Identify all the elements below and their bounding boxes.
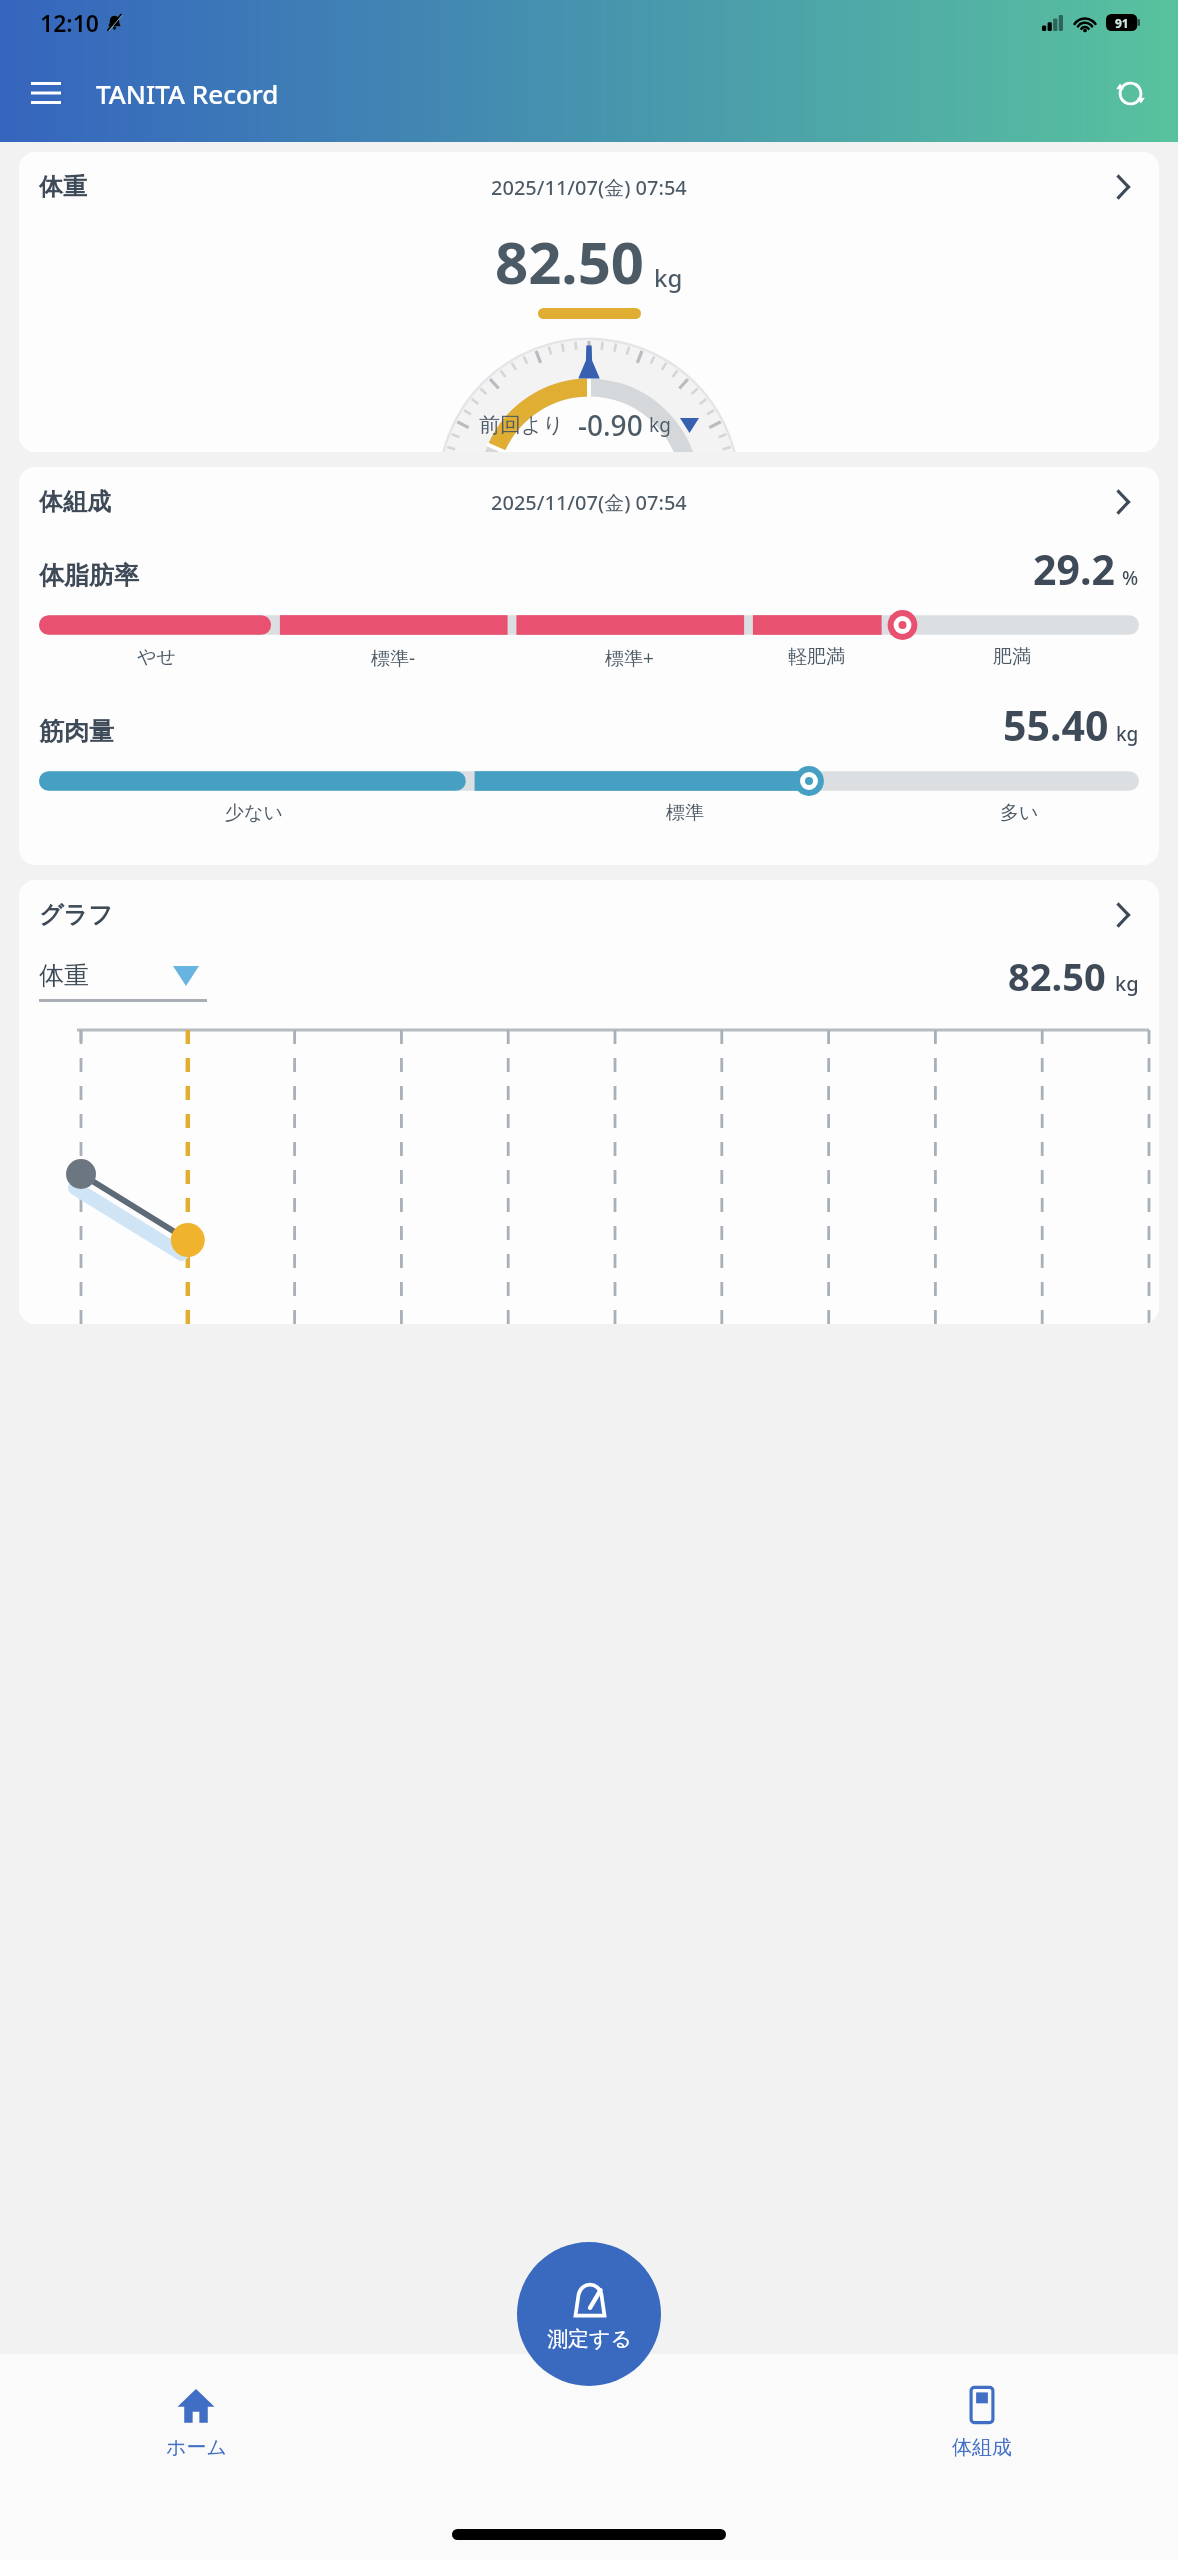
staticText: kg [649,412,671,438]
staticText: 肥満 [993,645,1031,669]
staticText: % [1122,565,1139,591]
staticText: 2025/11/07(金) 07:54 [491,489,687,516]
staticText: TANITA Record [96,76,279,111]
staticText: やせ [137,645,176,669]
staticText: 82.50 [495,222,645,301]
staticText: 前回より [479,412,564,438]
button[interactable]: グラフ [19,880,1159,1324]
staticText: 筋肉量 [39,716,114,747]
staticText: 体組成 [952,2435,1012,2460]
staticText: 体組成 [39,487,111,517]
staticText: -0.90 [578,406,643,444]
button[interactable]: 測定する [517,2242,661,2386]
staticText: 91 [1115,15,1129,31]
staticText: 2025/11/07(金) 07:54 [491,174,687,201]
staticText: 少ない [225,801,283,825]
staticText: kg [1115,970,1139,997]
button[interactable]: ホーム [0,2354,392,2490]
button[interactable]: Sync [1102,65,1158,121]
button[interactable]: Menu [18,65,74,121]
staticText: 12:10 [40,7,99,38]
staticText: 標準+ [605,645,654,671]
button[interactable]: 体組成 [785,2354,1178,2490]
staticText: 標準- [371,645,416,671]
staticText: 82.50 [1008,950,1106,1002]
staticText: 軽肥満 [788,645,845,669]
staticText: 体脂肪率 [39,560,139,591]
staticText: グラフ [39,900,113,930]
staticText: 標準 [666,801,704,825]
button[interactable]: 体組成 [19,467,1159,865]
staticText: 体重 [39,960,89,991]
staticText: 体重 [39,172,87,202]
staticText: ホーム [166,2435,227,2460]
staticText: 多い [1000,801,1039,825]
staticText: kg [1116,721,1139,747]
staticText: 29.2 [1033,541,1115,597]
staticText: 測定する [547,2326,632,2352]
staticText: 55.40 [1003,697,1109,753]
staticText: kg [654,261,683,294]
button[interactable]: 体重 [19,152,1159,452]
